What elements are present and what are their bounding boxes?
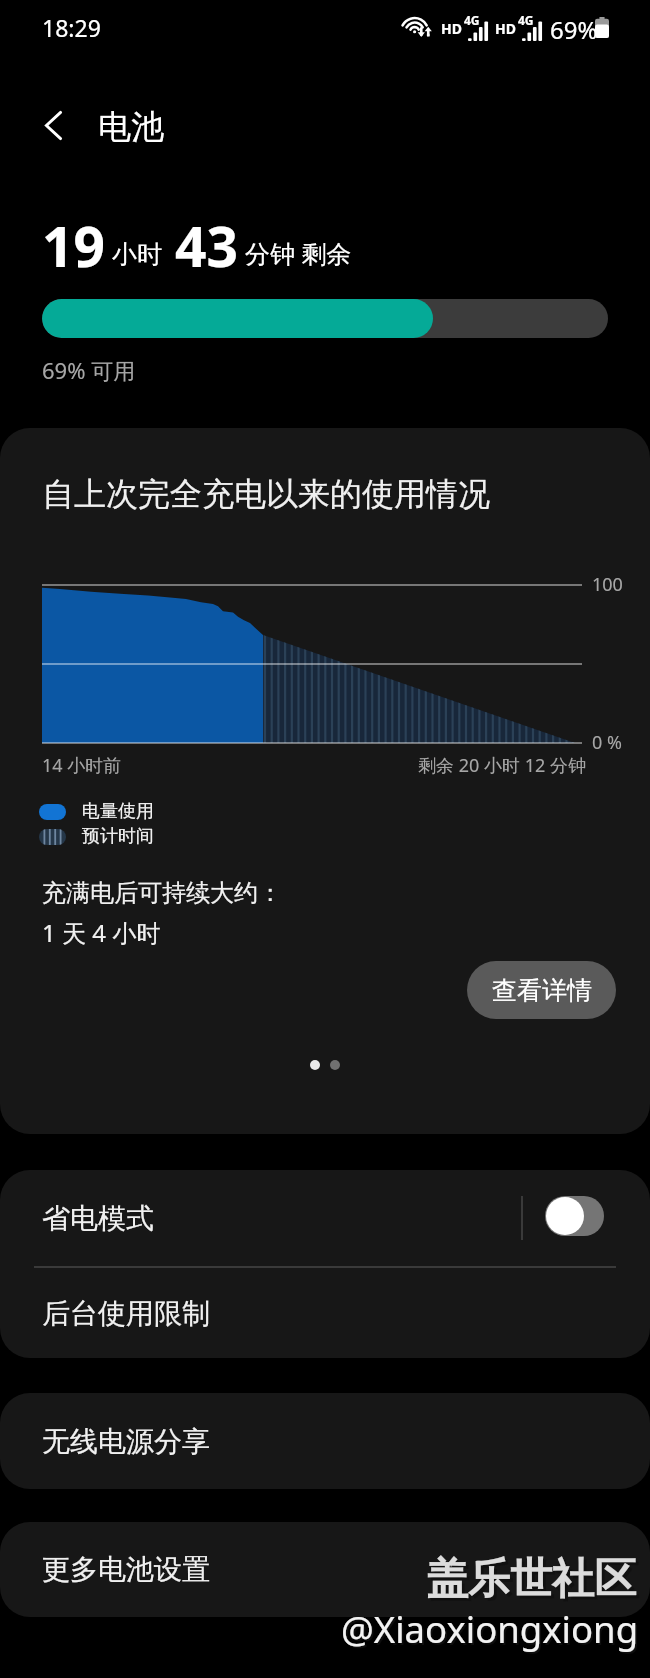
staticText: 4G bbox=[518, 12, 534, 28]
staticText: 无线电源分享 bbox=[42, 1424, 210, 1459]
staticText: @Xiaoxiongxiong bbox=[343, 1606, 641, 1656]
button[interactable]: Back bbox=[24, 87, 82, 163]
staticText: 18:29 bbox=[42, 12, 101, 43]
staticText: @Xiaoxiongxiong bbox=[341, 1604, 639, 1654]
staticText: 14 小时前 bbox=[42, 753, 122, 778]
staticText: 查看详情 bbox=[492, 975, 592, 1006]
staticText: 更多电池设置 bbox=[42, 1552, 210, 1587]
staticText: HD bbox=[441, 19, 462, 38]
staticText: 69% 可用 bbox=[42, 355, 136, 385]
staticText: 盖乐世社区 bbox=[429, 1556, 639, 1609]
staticText: 后台使用限制 bbox=[42, 1296, 210, 1331]
staticText: 省电模式 bbox=[42, 1201, 154, 1236]
staticText: 0 % bbox=[592, 730, 622, 755]
staticText: 盖乐世社区 bbox=[426, 1553, 636, 1606]
button[interactable]: 后台使用限制 bbox=[0, 1268, 650, 1358]
staticText: 1 天 4 小时 bbox=[42, 916, 161, 949]
staticText: 4G bbox=[464, 12, 480, 28]
staticText: 充满电后可持续大约： bbox=[42, 878, 282, 908]
staticText: 剩余 20 小时 12 分钟 bbox=[418, 753, 586, 778]
button[interactable]: 查看详情 bbox=[467, 961, 616, 1019]
staticText: 43 bbox=[175, 208, 238, 283]
staticText: 电量使用 bbox=[82, 800, 154, 823]
staticText: 电池 bbox=[98, 106, 164, 148]
staticText: 69% bbox=[550, 13, 598, 46]
staticText: 小时 bbox=[112, 239, 162, 270]
staticText: 自上次完全充电以来的使用情况 bbox=[42, 474, 490, 514]
staticText: 分钟 剩余 bbox=[245, 236, 352, 270]
staticText: 19 bbox=[42, 208, 105, 283]
staticText: 100 bbox=[592, 572, 623, 597]
button[interactable]: 更多电池设置 bbox=[0, 1522, 650, 1617]
button[interactable]: 无线电源分享 bbox=[0, 1393, 650, 1489]
staticText: HD bbox=[495, 19, 516, 38]
button[interactable]: 省电模式 bbox=[0, 1170, 650, 1266]
button[interactable]: Power saving mode toggle bbox=[545, 1196, 604, 1236]
staticText: 预计时间 bbox=[82, 825, 154, 848]
